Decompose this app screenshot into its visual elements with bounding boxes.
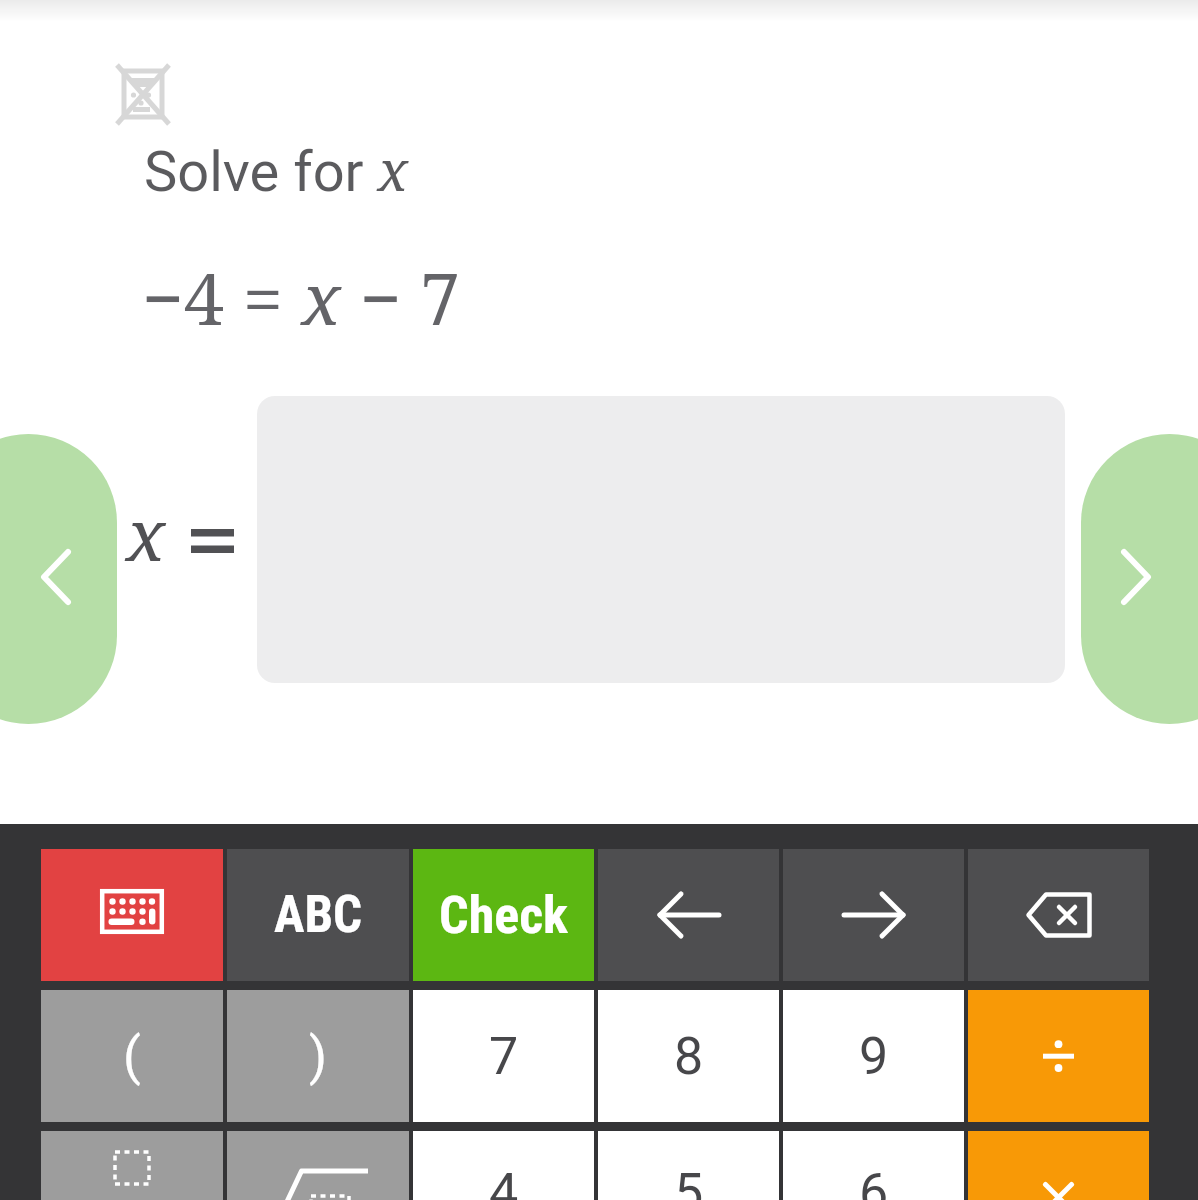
button[interactable]: 9 [783,990,964,1122]
staticText: Check [439,885,568,946]
button[interactable]: ABC [227,849,409,981]
staticText: ) [309,1026,328,1087]
staticText: Solve for x [144,131,409,207]
staticText: 9 [859,1026,889,1087]
button[interactable]: 5 [598,1131,779,1200]
staticText: 8 [674,1026,704,1087]
button[interactable] [598,849,779,981]
button[interactable] [0,434,117,724]
staticText: ABC [274,885,363,945]
button[interactable]: ) [227,990,409,1122]
button[interactable] [783,849,964,981]
button[interactable]: 6 [783,1131,964,1200]
button[interactable]: 7 [413,990,594,1122]
button[interactable] [968,1131,1149,1200]
staticText: 5 [674,1162,704,1200]
staticText: ( [123,1026,141,1087]
button[interactable] [968,849,1149,981]
button[interactable] [1081,434,1198,724]
staticText: 7 [489,1026,519,1087]
button[interactable] [41,1131,223,1200]
button[interactable] [968,990,1149,1122]
button[interactable] [41,849,223,981]
button[interactable]: 4 [413,1131,594,1200]
staticText: x [126,484,166,582]
button[interactable]: 8 [598,990,779,1122]
button[interactable] [227,1131,409,1200]
staticText: −4 = x − 7 [142,248,461,346]
button[interactable]: ( [41,990,223,1122]
staticText: 6 [859,1162,889,1200]
button[interactable]: Check [413,849,594,981]
staticText: 4 [489,1162,519,1200]
